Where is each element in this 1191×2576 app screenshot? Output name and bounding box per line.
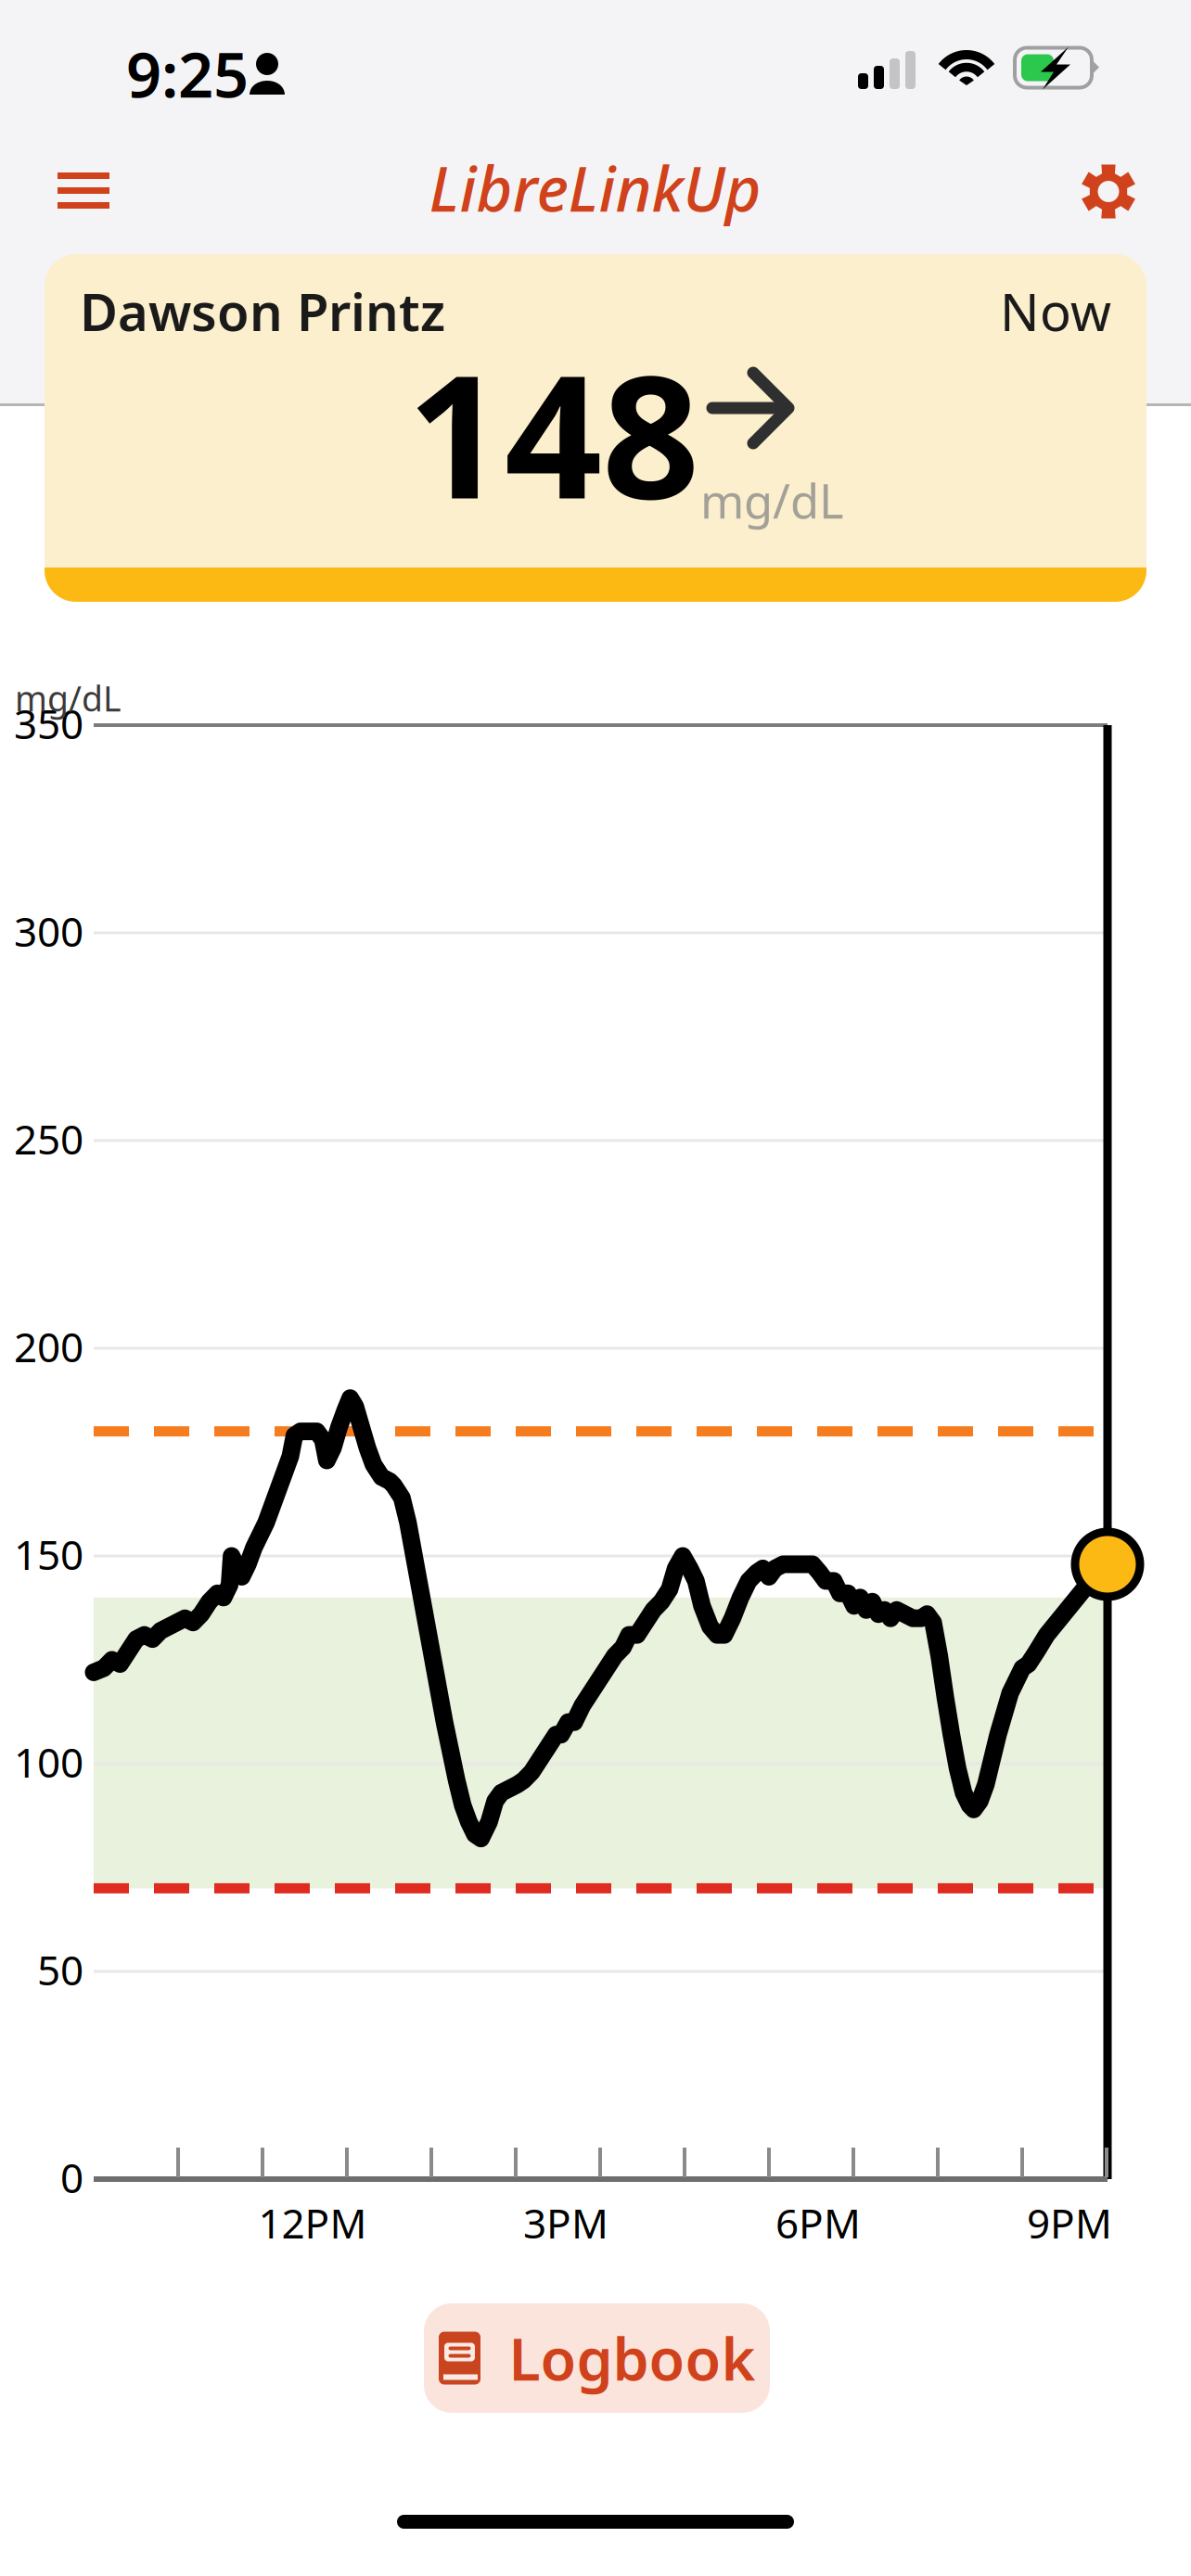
staticText: 150 — [14, 1527, 83, 1581]
staticText: 50 — [37, 1942, 83, 1997]
staticText: 350 — [14, 696, 83, 750]
staticText: mg/dL — [15, 675, 122, 721]
button[interactable]: Menu — [0, 137, 147, 244]
button[interactable]: Settings — [1044, 137, 1191, 244]
staticText: 12PM — [258, 2196, 367, 2250]
staticText: 6PM — [775, 2196, 861, 2250]
staticText: mg/dL — [700, 469, 844, 532]
staticText: Now — [1000, 276, 1111, 345]
staticText: 0 — [60, 2150, 83, 2204]
staticText: 3PM — [523, 2196, 608, 2250]
staticText: 300 — [14, 904, 83, 958]
staticText: Dawson Printz — [80, 276, 445, 345]
staticText: 200 — [14, 1319, 83, 1373]
staticText: 148 — [407, 319, 699, 546]
staticText: 250 — [14, 1112, 83, 1166]
button[interactable]: Dawson Printz — [45, 254, 1146, 602]
staticText: 100 — [14, 1735, 83, 1789]
button[interactable]: Logbook — [424, 2303, 770, 2413]
staticText: LibreLinkUp — [429, 147, 761, 229]
staticText: 9PM — [1027, 2196, 1112, 2250]
staticText: Logbook — [509, 2320, 756, 2397]
staticText: 9:25 — [126, 32, 249, 115]
